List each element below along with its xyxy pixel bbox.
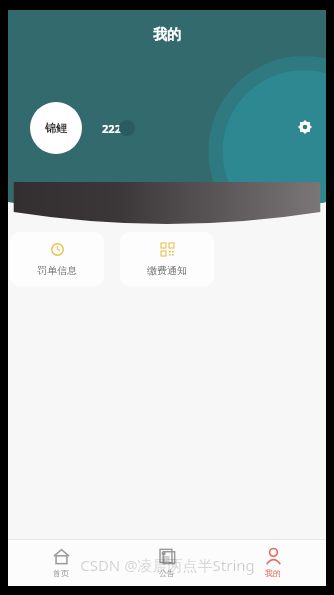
- staticText: 首页: [53, 568, 69, 578]
- staticText: 我的: [153, 26, 181, 44]
- button[interactable]: 我的: [220, 540, 326, 586]
- staticText: 锦鲤: [45, 121, 67, 135]
- staticText: 222: [102, 121, 121, 136]
- button[interactable]: 首页: [8, 540, 114, 586]
- staticText: 我的: [265, 568, 281, 578]
- button[interactable]: Settings: [288, 110, 322, 144]
- button[interactable]: 锦鲤: [30, 102, 82, 154]
- button[interactable]: 缴费通知: [120, 232, 214, 286]
- staticText: 缴费通知: [147, 264, 187, 277]
- staticText: 公告: [159, 568, 175, 578]
- button[interactable]: 罚单信息: [10, 232, 104, 286]
- staticText: CSDN @凌晨两点半String: [80, 555, 255, 575]
- button[interactable]: 公告: [114, 540, 220, 586]
- staticText: 罚单信息: [37, 264, 77, 277]
